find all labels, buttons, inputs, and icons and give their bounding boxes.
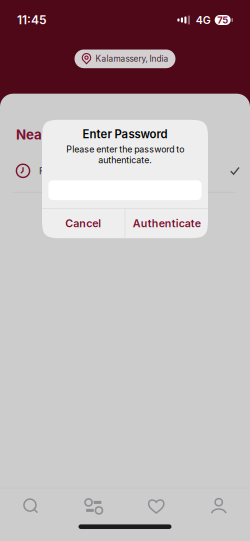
button[interactable]: Authenticate	[125, 209, 208, 238]
staticText: Nearby	[16, 127, 64, 143]
staticText: Authenticate	[133, 217, 201, 230]
button[interactable]: Kalamassery, India	[74, 49, 175, 68]
button[interactable]: Profile	[187, 488, 250, 524]
staticText: Please enter the password to authenticat…	[66, 144, 184, 165]
staticText: Recent search	[39, 165, 102, 176]
staticText: 4G	[196, 13, 211, 26]
staticText: 11:45	[17, 13, 47, 27]
staticText: 75	[217, 14, 228, 26]
staticText: Cancel	[65, 217, 101, 230]
button[interactable]: Search	[0, 488, 62, 524]
staticText: Enter Password	[82, 127, 167, 141]
button[interactable]: Favourites	[125, 488, 187, 524]
staticText: Kalamassery, India	[95, 54, 168, 64]
button[interactable]: Cancel	[42, 209, 125, 238]
button[interactable]: Filters	[62, 488, 125, 524]
